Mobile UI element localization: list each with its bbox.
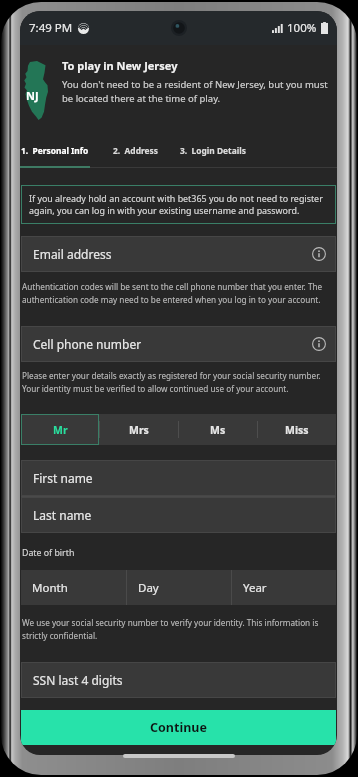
staticText: Continue [150,719,207,736]
staticText: First name [33,470,93,486]
staticText: If you already hold an account with bet3… [29,192,328,217]
button[interactable]: First name [21,460,336,496]
button[interactable]: Mrs [99,414,178,445]
other: More information [312,247,326,261]
other: More information [312,337,326,351]
button[interactable]: Miss [257,414,336,445]
button[interactable]: 3. Login Details [176,136,250,168]
button[interactable]: Mr [21,414,99,445]
button[interactable]: 1. Personal Info [20,136,90,168]
staticText: NJ [26,88,39,103]
staticText: 1. Personal Info [21,145,89,156]
staticText: Month [32,580,68,596]
staticText: SSN last 4 digits [33,672,123,688]
staticText: Mrs [129,423,149,437]
button[interactable]: 2. Address [90,136,180,168]
staticText: 7:49 PM [29,20,73,36]
staticText: You don't need to be a resident of New J… [62,78,333,105]
staticText: Last name [33,507,92,523]
button[interactable]: Cell phone number [21,326,336,362]
staticText: Miss [285,423,309,437]
button[interactable]: Ms [178,414,257,445]
staticText: Mr [53,423,68,437]
button[interactable]: Last name [21,497,336,533]
button[interactable]: Year [232,570,336,605]
button[interactable]: SSN last 4 digits [21,662,336,698]
button[interactable]: Month [21,570,126,605]
staticText: Cell phone number [33,336,142,352]
button[interactable]: Email address [21,236,336,272]
staticText: Year [243,580,267,596]
staticText: Email address [33,246,112,262]
staticText: We use your social security number to ve… [22,617,334,642]
staticText: 2. Address [113,145,158,156]
staticText: To play in New Jersey [62,58,178,73]
staticText: Please enter your details exactly as reg… [22,370,334,395]
button[interactable]: Day [127,570,231,605]
staticText: Ms [210,423,226,437]
staticText: 100% [287,20,317,36]
staticText: Authentication codes will be sent to the… [22,281,334,306]
button[interactable]: Continue [21,710,336,745]
staticText: Day [138,580,159,596]
staticText: Date of birth [22,547,75,559]
staticText: 3. Login Details [180,145,246,156]
